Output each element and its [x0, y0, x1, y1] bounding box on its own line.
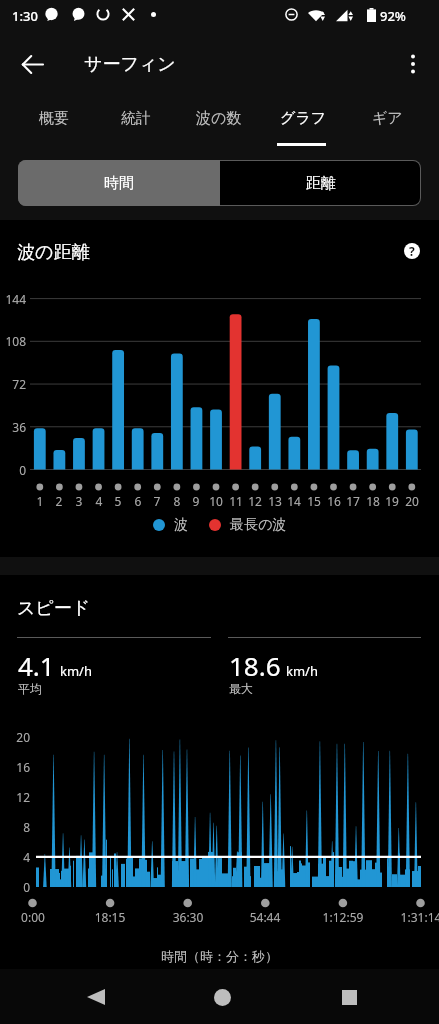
staticText: 0: [0, 879, 30, 895]
staticText: 波の数: [196, 109, 242, 128]
button[interactable]: Help: [396, 235, 428, 267]
staticText: 統計: [121, 109, 151, 128]
staticText: 4: [0, 849, 30, 865]
staticText: km/h: [60, 662, 92, 680]
staticText: 16: [322, 493, 346, 509]
button[interactable]: Back: [10, 42, 54, 86]
staticText: 1:12:59: [303, 909, 383, 925]
staticText: グラフ: [280, 109, 327, 128]
staticText: 8: [165, 493, 189, 509]
staticText: 最大: [229, 681, 253, 696]
staticText: 20: [0, 729, 30, 745]
staticText: 最長の波: [230, 516, 287, 534]
staticText: 18:15: [70, 909, 150, 925]
staticText: 14: [282, 493, 306, 509]
staticText: 5: [106, 493, 130, 509]
staticText: 4: [87, 493, 111, 509]
staticText: 概要: [39, 109, 69, 128]
staticText: 1:30: [12, 7, 38, 25]
staticText: 11: [224, 493, 248, 509]
staticText: 12: [243, 493, 267, 509]
staticText: 17: [341, 493, 365, 509]
staticText: 時間（時：分：秒）: [161, 948, 278, 964]
staticText: ?: [409, 243, 415, 259]
staticText: 15: [302, 493, 326, 509]
button[interactable]: Back: [74, 975, 118, 1019]
staticText: km/h: [286, 662, 318, 680]
staticText: 平均: [18, 681, 42, 696]
staticText: 2: [47, 493, 71, 509]
staticText: 3: [67, 493, 91, 509]
staticText: 20: [400, 493, 424, 509]
button[interactable]: 距離: [220, 160, 421, 206]
button[interactable]: 波の数: [177, 92, 261, 145]
staticText: 144: [0, 291, 26, 307]
staticText: ギア: [372, 109, 403, 128]
staticText: 18: [361, 493, 385, 509]
staticText: 7: [145, 493, 169, 509]
staticText: 10: [204, 493, 228, 509]
staticText: 36:30: [148, 909, 228, 925]
staticText: 1:31:14: [381, 909, 439, 925]
staticText: 13: [263, 493, 287, 509]
staticText: スピード: [17, 597, 91, 620]
button[interactable]: 概要: [12, 92, 96, 145]
staticText: 12: [0, 789, 30, 805]
staticText: サーフィン: [84, 53, 176, 76]
staticText: 0:00: [0, 909, 73, 925]
staticText: 54:44: [225, 909, 305, 925]
staticText: 1: [28, 493, 52, 509]
button[interactable]: Recents: [327, 975, 371, 1019]
staticText: 36: [0, 419, 26, 435]
button[interactable]: 統計: [94, 92, 178, 145]
button[interactable]: 時間: [18, 160, 220, 206]
button[interactable]: Home: [200, 975, 244, 1019]
button[interactable]: グラフ: [261, 92, 345, 145]
staticText: 4.1: [18, 648, 55, 683]
staticText: 時間: [104, 174, 134, 193]
staticText: 9: [184, 493, 208, 509]
staticText: 波: [174, 516, 188, 534]
staticText: 8: [0, 819, 30, 835]
staticText: 19: [380, 493, 404, 509]
staticText: 72: [0, 376, 26, 392]
button[interactable]: More options: [391, 42, 435, 86]
button[interactable]: ギア: [345, 92, 429, 145]
staticText: 距離: [306, 174, 336, 193]
staticText: 6: [126, 493, 150, 509]
staticText: 16: [0, 759, 30, 775]
staticText: 0: [0, 462, 26, 478]
staticText: 108: [0, 333, 26, 349]
staticText: 18.6: [229, 648, 281, 683]
staticText: 波の距離: [17, 241, 90, 264]
staticText: 92%: [380, 7, 406, 25]
